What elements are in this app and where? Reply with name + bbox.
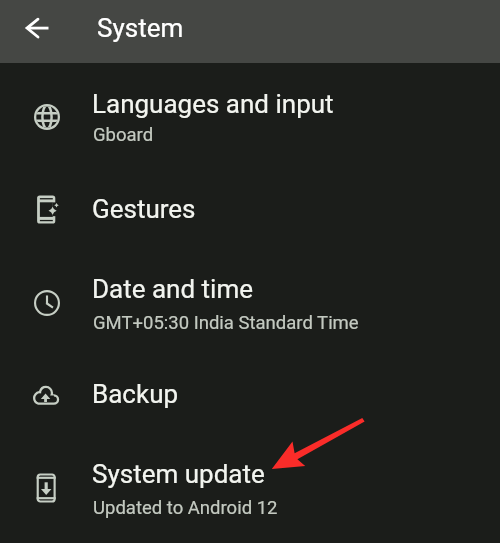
staticText: System xyxy=(97,13,184,43)
button[interactable]: Languages and input xyxy=(0,65,500,172)
button[interactable]: Date and time xyxy=(0,253,500,358)
staticText: Gestures xyxy=(92,194,196,224)
staticText: System update xyxy=(92,459,265,489)
staticText: GMT+05:30 India Standard Time xyxy=(93,312,359,334)
button[interactable]: System update xyxy=(0,438,500,543)
staticText: Languages and input xyxy=(92,89,334,119)
staticText: Updated to Android 12 xyxy=(93,497,278,519)
staticText: Gboard xyxy=(93,124,154,146)
staticText: Backup xyxy=(92,379,179,409)
button[interactable]: Navigate up xyxy=(13,4,61,52)
button[interactable]: Gestures xyxy=(0,172,500,253)
staticText: Date and time xyxy=(92,274,253,304)
button[interactable]: Backup xyxy=(0,358,500,438)
